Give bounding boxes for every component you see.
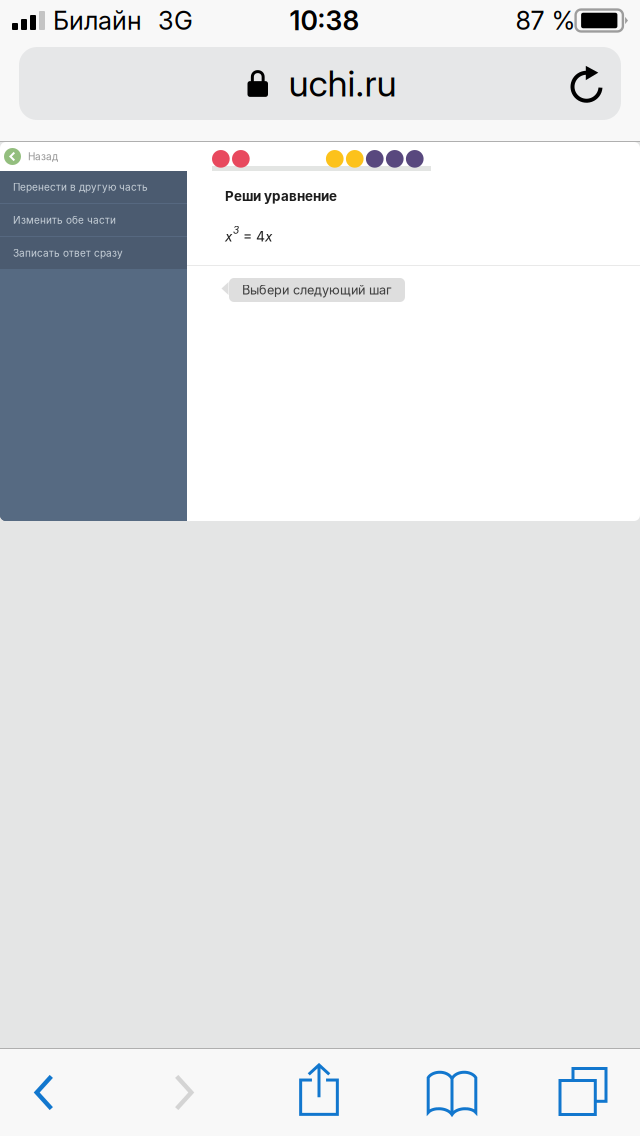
- staticText: 3: [233, 224, 239, 236]
- button[interactable]: Записать ответ сразу: [0, 237, 187, 269]
- staticText: Назад: [28, 150, 58, 163]
- button[interactable]: Forward: [140, 1049, 228, 1136]
- staticText: 10:38: [289, 4, 359, 37]
- staticText: Выбери следующий шаг: [242, 282, 392, 298]
- button[interactable]: Share: [275, 1049, 363, 1136]
- staticText: Перенести в другую часть: [13, 181, 148, 193]
- button[interactable]: Bookmarks: [408, 1049, 496, 1136]
- staticText: uchi.ru: [288, 62, 396, 105]
- staticText: = 4: [239, 228, 265, 245]
- staticText: Записать ответ сразу: [13, 247, 123, 259]
- button[interactable]: Back: [0, 1049, 88, 1136]
- button[interactable]: Назад: [0, 142, 58, 171]
- button[interactable]: uchi.ru: [19, 47, 621, 120]
- staticText: 87 %: [516, 5, 576, 36]
- staticText: 3G: [158, 5, 193, 36]
- staticText: x: [225, 228, 233, 245]
- button[interactable]: Tabs: [539, 1049, 627, 1136]
- button[interactable]: Перенести в другую часть: [0, 171, 187, 203]
- staticText: Изменить обе части: [13, 214, 116, 226]
- staticText: Билайн: [53, 5, 142, 36]
- staticText: Реши уравнение: [225, 188, 337, 204]
- button[interactable]: Изменить обе части: [0, 204, 187, 236]
- staticText: x: [265, 228, 273, 245]
